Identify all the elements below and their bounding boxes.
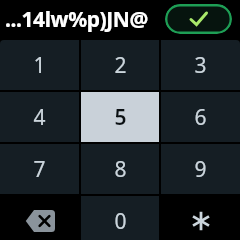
staticText: 6 bbox=[194, 103, 207, 132]
staticText: 7 bbox=[33, 155, 46, 184]
button[interactable]: 5 bbox=[81, 92, 159, 142]
staticText: 3 bbox=[194, 51, 207, 80]
button[interactable]: Backspace bbox=[0, 196, 79, 240]
staticText: 9 bbox=[194, 155, 207, 184]
button[interactable]: 0 bbox=[81, 196, 159, 240]
button[interactable]: 7 bbox=[0, 144, 79, 194]
staticText: 8 bbox=[114, 155, 127, 184]
staticText: 4 bbox=[33, 103, 46, 132]
staticText: 2 bbox=[114, 51, 127, 80]
staticText: 0 bbox=[114, 207, 127, 236]
button[interactable]: 9 bbox=[161, 144, 240, 194]
staticText: 5 bbox=[114, 103, 127, 132]
button[interactable]: Confirm bbox=[165, 4, 232, 34]
button[interactable]: 8 bbox=[81, 144, 159, 194]
staticText: ...14lw%p)JN@ bbox=[5, 5, 148, 34]
button[interactable]: 4 bbox=[0, 92, 79, 142]
button[interactable]: 2 bbox=[81, 40, 159, 90]
staticText: 1 bbox=[33, 51, 46, 80]
button[interactable] bbox=[161, 196, 240, 240]
button[interactable]: 6 bbox=[161, 92, 240, 142]
button[interactable]: 1 bbox=[0, 40, 79, 90]
button[interactable]: 3 bbox=[161, 40, 240, 90]
